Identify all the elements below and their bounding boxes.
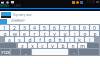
staticText: 8 [73,25,76,30]
staticText: z [21,43,24,48]
staticText: 10:45 [87,0,95,4]
button[interactable]: e [20,31,29,36]
staticText: LIVE [14,4,21,8]
staticText: r [33,31,36,36]
button[interactable]: d [25,37,34,42]
button[interactable]: 6 [50,25,59,30]
button[interactable]: 4 [30,25,39,30]
staticText: t [44,31,46,36]
button[interactable]: v [48,43,57,48]
staticText: Top story now [13,13,32,17]
staticText: 0 [93,25,96,30]
staticText: Headline [11,19,23,23]
staticText: n [71,43,75,48]
staticText: . [73,50,75,55]
staticText: i [74,31,76,36]
button[interactable]: n [68,43,77,48]
staticText: w [13,31,17,36]
button[interactable]: i [70,31,79,36]
staticText: f [39,37,41,42]
button[interactable]: 1 [0,25,9,30]
staticText: h [58,37,62,42]
button[interactable]: 2 [10,25,19,30]
button[interactable]: m [78,43,87,48]
button[interactable]: r [30,31,39,36]
button[interactable]: a [5,37,14,42]
button[interactable]: l [85,37,94,42]
button[interactable]: q [0,31,9,36]
button[interactable]: , [21,49,31,55]
button[interactable]: k [75,37,84,42]
staticText: g [48,37,52,42]
staticText: k [78,37,81,42]
staticText: c [41,43,44,48]
staticText: 2 [13,25,16,30]
staticText: b [61,43,65,48]
button[interactable]: z [18,43,27,48]
staticText: 6 [53,25,56,30]
button[interactable]: b [58,43,67,48]
staticText: x [31,43,34,48]
button[interactable]: c [38,43,47,48]
staticText: p [93,31,97,36]
button[interactable]: f [35,37,44,42]
button[interactable]: o [80,31,89,36]
button[interactable]: 5 [40,25,49,30]
button[interactable]: x [28,43,37,48]
staticText: m [80,43,85,48]
staticText: 4 [33,25,36,30]
button[interactable]: Headline [0,19,23,24]
button[interactable]: 8 [70,25,79,30]
staticText: j [69,37,71,42]
staticText: l [89,37,91,42]
button[interactable]: w [10,31,19,36]
staticText: 1 [3,25,6,30]
staticText: v [51,43,54,48]
button[interactable]: t [40,31,49,36]
staticText: d [28,37,32,42]
button[interactable]: ?123 [0,49,10,55]
staticText: e [23,31,26,36]
button[interactable]: 9 [80,25,89,30]
staticText: s [18,37,21,42]
staticText: NEWS [0,4,9,8]
button[interactable]: p [90,31,99,36]
staticText: o [83,31,87,36]
staticText: , [25,50,27,55]
button[interactable]: y [50,31,59,36]
button[interactable]: s [15,37,24,42]
staticText: 5 [43,25,46,30]
staticText: 2 min ago [13,18,26,22]
staticText: a [8,37,11,42]
button[interactable]: h [55,37,64,42]
button[interactable]: . [69,49,78,55]
staticText: q [3,31,7,36]
staticText: u [63,31,67,36]
button[interactable]: j [65,37,74,42]
staticText: ?123 [1,50,10,55]
button[interactable]: 3 [20,25,29,30]
staticText: 7 [63,25,66,30]
button[interactable]: u [60,31,69,36]
staticText: 3 [23,25,26,30]
button[interactable]: 7 [60,25,69,30]
button[interactable]: 0 [90,25,99,30]
button[interactable]: NEWS [0,4,100,8]
staticText: 9 [83,25,86,30]
button[interactable]: g [45,37,54,42]
button[interactable]: Top story now [1,12,32,22]
staticText: y [53,31,56,36]
